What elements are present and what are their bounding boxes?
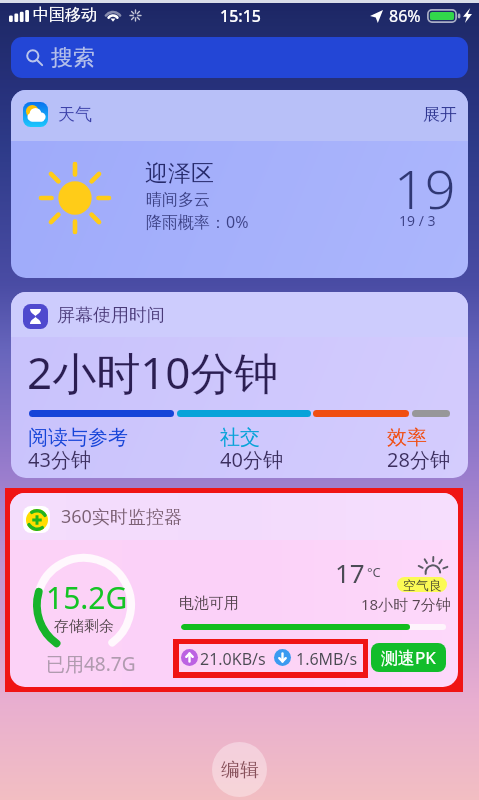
staticText: 存储剩余: [54, 617, 114, 636]
staticText: °C: [367, 563, 381, 581]
button[interactable]: 搜索: [11, 37, 468, 78]
staticText: 已用48.7G: [46, 651, 136, 677]
button[interactable]: 编辑: [212, 742, 267, 797]
button[interactable]: 360实时监控器: [10, 493, 458, 687]
button[interactable]: 天气: [11, 90, 468, 278]
staticText: 19: [394, 151, 456, 225]
button[interactable]: 测速PK: [371, 643, 446, 672]
staticText: 空气良: [403, 577, 442, 592]
staticText: 28分钟: [387, 446, 450, 473]
staticText: 电池可用: [179, 594, 239, 613]
staticText: 搜索: [51, 44, 95, 72]
staticText: 19 / 3: [399, 211, 436, 230]
staticText: 15.2G: [46, 577, 128, 618]
staticText: 360实时监控器: [61, 504, 182, 529]
staticText: 编辑: [221, 758, 259, 782]
staticText: 阅读与参考: [28, 425, 128, 450]
staticText: 中国移动: [33, 5, 97, 25]
staticText: 晴间多云: [146, 190, 210, 210]
staticText: 测速PK: [381, 646, 436, 669]
staticText: 迎泽区: [145, 159, 214, 188]
staticText: 2小时10分钟: [27, 342, 279, 402]
staticText: 展开: [423, 104, 457, 125]
staticText: 17: [335, 555, 365, 590]
staticText: 社交: [220, 425, 260, 450]
staticText: 1.6MB/s: [296, 648, 358, 670]
staticText: 43分钟: [28, 446, 91, 473]
staticText: 15:15: [220, 5, 261, 27]
button[interactable]: 屏幕使用时间: [11, 292, 468, 478]
staticText: 21.0KB/s: [200, 648, 266, 670]
staticText: 效率: [387, 425, 427, 450]
staticText: 40分钟: [220, 446, 283, 473]
staticText: 86%: [389, 5, 421, 27]
staticText: 18小时 7分钟: [361, 594, 451, 614]
staticText: 屏幕使用时间: [57, 304, 165, 327]
staticText: 降雨概率：0%: [146, 211, 249, 233]
staticText: 天气: [58, 104, 92, 125]
